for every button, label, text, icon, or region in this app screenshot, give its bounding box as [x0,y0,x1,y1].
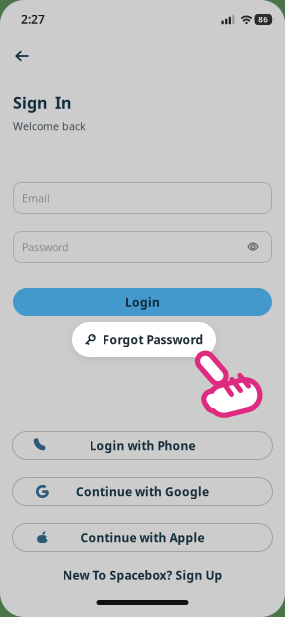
button[interactable]: Login with Phone [12,431,273,460]
button[interactable]: Back [8,44,36,68]
button[interactable]: Show password [241,235,265,259]
staticText: New To Spacebox? Sign Up [62,567,222,583]
staticText: Continue with Google [76,483,209,499]
staticText: 86 [258,14,268,25]
button[interactable]: New To Spacebox? Sign Up [62,567,222,583]
button[interactable]: Login [13,288,272,316]
staticText: Password [22,240,69,254]
staticText: Sign In [13,92,71,113]
button[interactable]: Continue with Google [12,477,273,506]
staticText: Email [22,191,50,205]
button[interactable]: Email [13,182,272,214]
button[interactable]: Continue with Apple [12,523,273,552]
staticText: Forgot Password [102,331,203,347]
staticText: Continue with Apple [80,529,204,545]
staticText: Login [125,294,160,310]
button[interactable]: Forgot Password [72,322,216,357]
staticText: Welcome back [13,119,86,133]
staticText: 2:27 [21,11,45,27]
staticText: Login with Phone [89,437,195,453]
button[interactable]: Password [13,231,272,263]
